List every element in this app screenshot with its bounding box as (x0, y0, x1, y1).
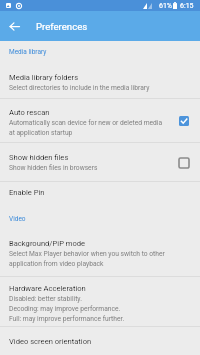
button[interactable]: Media library folders (0, 65, 200, 98)
staticText: Enable Pin (9, 188, 45, 197)
button[interactable]: Hardware Acceleration (0, 277, 200, 326)
button[interactable]: Show hidden files (0, 143, 200, 181)
button[interactable]: Video screen orientation (0, 327, 200, 355)
staticText: Background/PiP mode (9, 239, 86, 248)
button[interactable]: Unchecked (178, 157, 189, 168)
staticText: Media library (9, 48, 47, 56)
staticText: Preferences (36, 21, 88, 32)
staticText: Automatically scan device for new or del… (9, 117, 165, 137)
staticText: 6:15 (180, 2, 194, 10)
button[interactable]: Auto rescan (0, 99, 200, 142)
staticText: Show hidden files in browsers (9, 162, 98, 172)
button[interactable]: Checked (178, 115, 189, 126)
staticText: Video screen orientation (9, 337, 92, 346)
button[interactable]: Back (0, 12, 28, 40)
button[interactable]: Background/PiP mode (0, 230, 200, 276)
staticText: Hardware Acceleration (9, 284, 86, 293)
button[interactable]: Enable Pin (0, 182, 200, 202)
staticText: Select Max Player behavior when you swit… (9, 248, 189, 268)
staticText: Auto rescan (9, 108, 50, 117)
staticText: Select directories to include in the med… (9, 82, 150, 92)
staticText: Media library folders (9, 73, 79, 82)
staticText: Show hidden files (9, 153, 69, 162)
staticText: 61% (159, 2, 172, 10)
staticText: Video (9, 215, 26, 223)
staticText: Disabled: better stability. Decoding: ma… (9, 293, 125, 323)
